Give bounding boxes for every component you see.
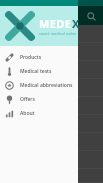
- staticText: Offers: [20, 96, 35, 103]
- button[interactable]: [0, 115, 103, 133]
- staticText: X: [72, 16, 78, 31]
- button[interactable]: [0, 133, 103, 151]
- button[interactable]: [0, 25, 103, 43]
- staticText: Products: [20, 54, 42, 61]
- button[interactable]: Offers: [0, 92, 78, 106]
- button[interactable]: [0, 151, 103, 169]
- staticText: Medical tests: [20, 68, 52, 75]
- button[interactable]: [0, 169, 103, 183]
- button[interactable]: Medical tests: [0, 64, 78, 78]
- staticText: About: [20, 110, 35, 117]
- staticText: smart medical index: [39, 31, 77, 36]
- button[interactable]: About: [0, 106, 78, 120]
- staticText: Medical abbreviations: [20, 82, 73, 89]
- button[interactable]: [0, 97, 103, 115]
- button[interactable]: [0, 43, 103, 61]
- button[interactable]: Search: [84, 9, 98, 23]
- staticText: MEDE: [39, 16, 72, 31]
- button[interactable]: [0, 61, 103, 79]
- button[interactable]: Products: [0, 50, 78, 64]
- button[interactable]: [0, 79, 103, 97]
- button[interactable]: Medical abbreviations: [0, 78, 78, 92]
